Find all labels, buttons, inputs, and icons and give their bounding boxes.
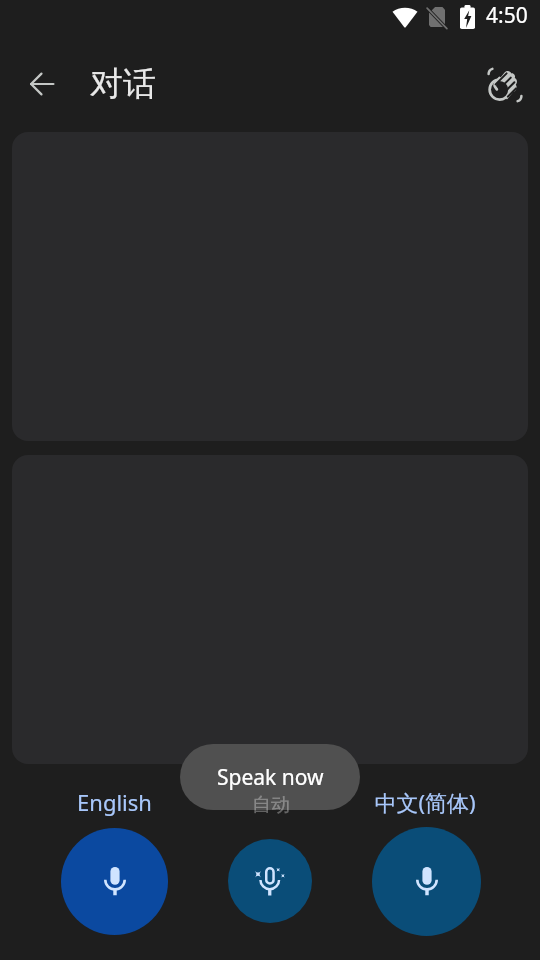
button[interactable]: Back <box>18 60 66 108</box>
staticText: 中文(简体) <box>374 787 476 817</box>
button[interactable] <box>12 455 528 764</box>
button[interactable]: Auto detect language <box>228 839 312 923</box>
button[interactable]: Speak English <box>61 828 168 935</box>
button[interactable]: Speak now <box>180 744 360 810</box>
staticText: English <box>77 787 152 817</box>
staticText: 对话 <box>90 63 156 105</box>
button[interactable]: Speak Chinese <box>372 827 481 936</box>
button[interactable]: English <box>24 784 204 820</box>
staticText: Speak now <box>217 763 324 792</box>
button[interactable]: 自动 <box>181 787 361 823</box>
button[interactable]: 中文(简体) <box>335 784 515 820</box>
button[interactable]: Gesture help <box>481 61 529 109</box>
staticText: 4:50 <box>486 1 528 30</box>
staticText: 自动 <box>252 793 290 817</box>
